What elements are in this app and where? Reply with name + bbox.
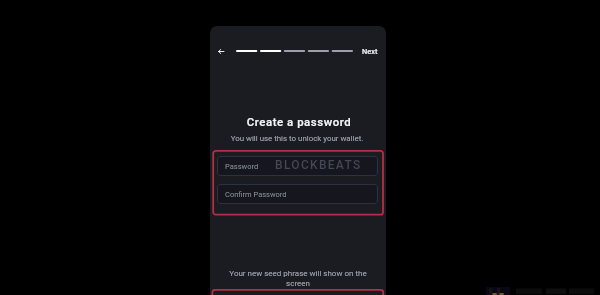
button[interactable]: Back [212,42,230,60]
button[interactable]: Password [217,156,378,176]
staticText: BLOCKBEATS [275,158,362,172]
staticText: Confirm Password [225,190,287,199]
staticText: Your new seed phrase will show on the sc… [228,269,368,288]
staticText: Password [225,162,259,171]
staticText: Next [362,47,378,56]
staticText: Create a password [211,115,386,128]
button[interactable]: Next [360,43,379,60]
staticText: You will use this to unlock your wallet. [210,134,385,143]
button[interactable]: Confirm Password [217,184,378,204]
